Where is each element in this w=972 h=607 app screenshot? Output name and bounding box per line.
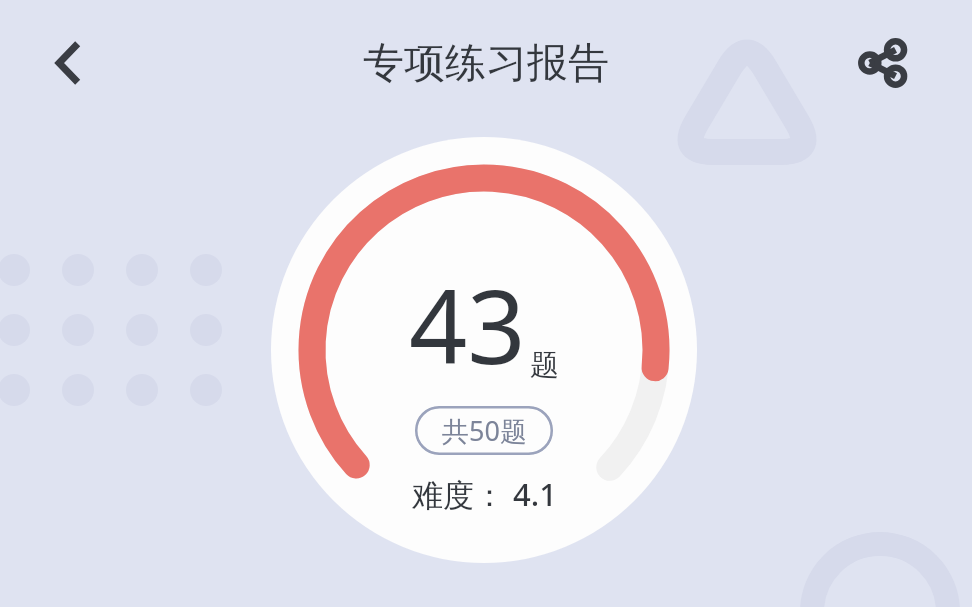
button[interactable]: Back bbox=[38, 31, 102, 95]
staticText: 专项练习报告 bbox=[363, 38, 609, 90]
staticText: 难度： 4.1 bbox=[412, 473, 557, 515]
staticText: 共50题 bbox=[442, 412, 527, 449]
staticText: 题 bbox=[530, 347, 559, 384]
button[interactable]: Share bbox=[849, 31, 913, 95]
button[interactable]: 共50题 bbox=[415, 406, 553, 455]
staticText: 43 bbox=[409, 255, 526, 394]
